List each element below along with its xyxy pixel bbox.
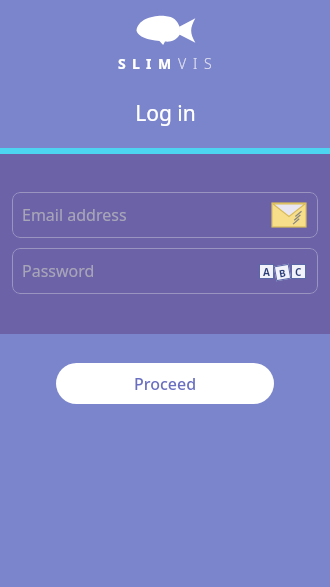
staticText: B	[278, 265, 287, 280]
staticText: Password	[22, 260, 259, 282]
staticText: I	[146, 54, 152, 73]
button[interactable]: Proceed	[56, 363, 274, 404]
staticText: Proceed	[134, 373, 197, 395]
staticText: L	[132, 54, 140, 73]
button[interactable]: Password	[12, 248, 318, 294]
staticText: I	[193, 54, 198, 73]
staticText: V	[178, 54, 187, 73]
staticText: Log in	[135, 99, 196, 128]
other: Password keyboard	[259, 260, 306, 282]
staticText: S	[118, 54, 126, 73]
staticText: A	[263, 265, 270, 279]
button[interactable]: Email address	[12, 192, 318, 238]
staticText: Email address	[22, 204, 272, 226]
staticText: M	[158, 54, 172, 73]
staticText: C	[295, 265, 302, 279]
other: Email	[272, 203, 306, 227]
staticText: S	[204, 54, 212, 73]
